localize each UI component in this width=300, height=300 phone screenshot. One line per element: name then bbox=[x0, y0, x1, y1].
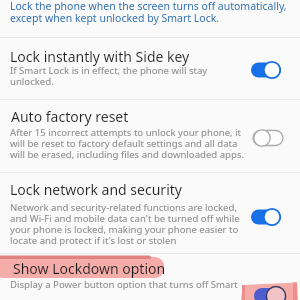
staticText: except when kept unlocked by Smart Lock. bbox=[10, 11, 220, 25]
button[interactable] bbox=[0, 174, 300, 252]
button[interactable] bbox=[253, 129, 283, 147]
staticText: unlocked. bbox=[10, 75, 54, 88]
staticText: locate and protect if it's lost or stole… bbox=[10, 234, 177, 247]
staticText: Auto factory reset bbox=[11, 107, 129, 126]
button[interactable] bbox=[0, 101, 300, 171]
staticText: Lock network and security bbox=[10, 180, 182, 199]
staticText: Lock the phone when the screen turns off… bbox=[10, 0, 287, 13]
staticText: Display a Power button option that turns… bbox=[10, 278, 238, 291]
button[interactable] bbox=[251, 208, 281, 226]
button[interactable] bbox=[251, 61, 281, 79]
button[interactable] bbox=[0, 40, 300, 98]
staticText: will be reset to factory default setting… bbox=[10, 137, 238, 150]
staticText: and Wi-Fi and mobile data can't be turne… bbox=[10, 212, 240, 225]
staticText: Show Lockdown option bbox=[13, 259, 166, 278]
staticText: your phone is locked, making your phone … bbox=[10, 223, 239, 236]
staticText: If Smart Lock is in effect, the phone wi… bbox=[10, 64, 208, 77]
staticText: Network and security-related functions a… bbox=[10, 201, 237, 214]
button[interactable] bbox=[0, 255, 300, 300]
staticText: After 15 incorrect attempts to unlock yo… bbox=[10, 126, 242, 139]
staticText: Lock instantly with Side key bbox=[10, 47, 190, 66]
staticText: will be erased, including files and down… bbox=[10, 148, 245, 161]
